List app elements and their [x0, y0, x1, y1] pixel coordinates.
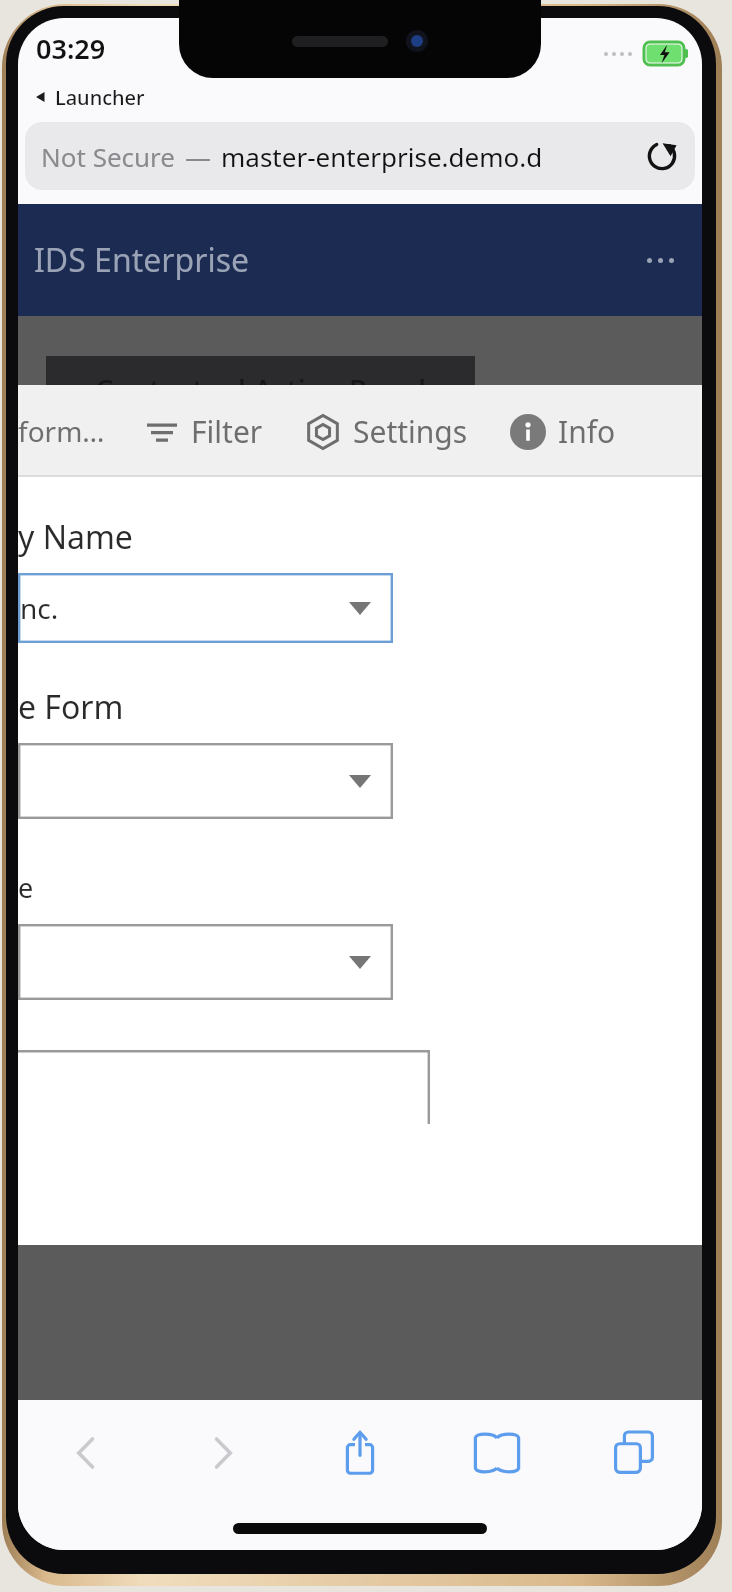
staticText: — — [185, 139, 212, 174]
button[interactable]: Launcher — [18, 78, 702, 116]
button[interactable]: Info — [508, 403, 618, 460]
staticText: Not Secure — [41, 139, 176, 174]
staticText: Contextual Action Panel — [95, 370, 427, 385]
button[interactable]: Forward — [154, 1400, 291, 1505]
staticText: nc. — [20, 589, 59, 627]
staticText: IDS Enterprise — [34, 238, 250, 282]
staticText: y Name — [18, 515, 133, 559]
staticText: Settings — [353, 411, 468, 452]
button[interactable]: Back — [18, 1400, 154, 1505]
button[interactable]: Share — [291, 1400, 428, 1505]
button[interactable]: form… — [18, 412, 105, 450]
staticText: Filter — [191, 411, 263, 452]
staticText: e Form — [18, 685, 124, 729]
button[interactable] — [18, 743, 393, 819]
staticText: Info — [558, 411, 616, 452]
staticText: e — [18, 869, 34, 906]
button[interactable] — [18, 1050, 430, 1124]
staticText: form… — [18, 412, 105, 450]
button[interactable]: Tabs — [565, 1400, 702, 1505]
staticText: Launcher — [55, 84, 145, 111]
button[interactable]: Not Secure — [25, 122, 695, 190]
button[interactable]: nc. — [18, 573, 393, 643]
button[interactable]: More options — [638, 238, 682, 282]
button[interactable]: Filter — [143, 403, 265, 460]
staticText: master-enterprise.demo.d — [221, 139, 543, 174]
button[interactable]: Reload — [641, 135, 683, 177]
staticText: 03:29 — [36, 30, 106, 67]
button[interactable]: Settings — [303, 403, 470, 460]
button[interactable] — [18, 924, 393, 1000]
button[interactable]: Bookmarks — [428, 1400, 565, 1505]
